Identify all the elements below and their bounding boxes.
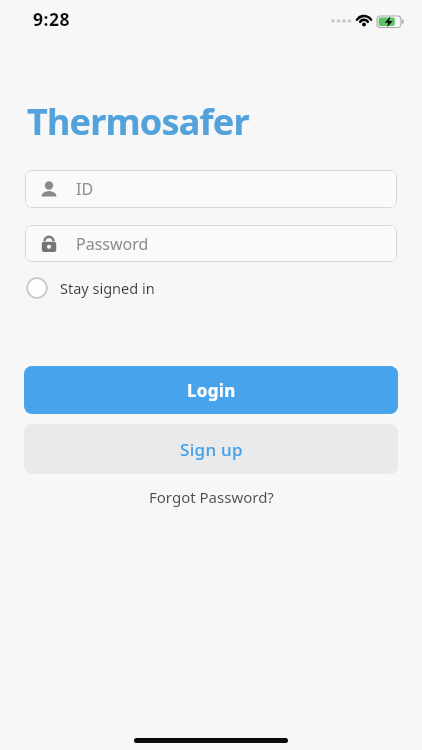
button[interactable]: Forgot Password? [145, 483, 278, 511]
staticText: Stay signed in [60, 278, 155, 298]
staticText: Login [187, 379, 236, 402]
staticText: Sign up [180, 438, 243, 461]
staticText: 9:28 [33, 7, 70, 31]
button[interactable]: Stay signed in [26, 277, 155, 299]
button[interactable]: Sign up [24, 424, 398, 474]
staticText: Password [76, 233, 149, 255]
staticText: ID [76, 178, 94, 200]
button[interactable]: Password [25, 225, 397, 262]
staticText: Thermosafer [27, 97, 249, 146]
button[interactable]: ID [25, 170, 397, 208]
staticText: Forgot Password? [149, 487, 274, 507]
button[interactable]: Login [24, 366, 398, 414]
